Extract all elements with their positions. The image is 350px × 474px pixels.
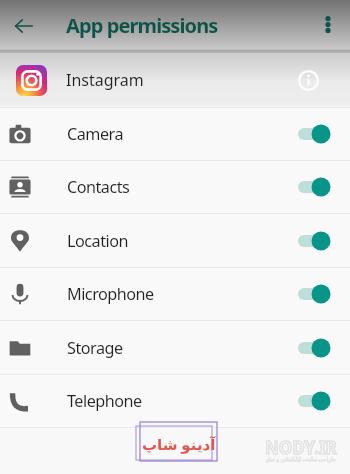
button[interactable]: Toggle permission [298,175,334,199]
staticText: Microphone [67,283,154,305]
button[interactable]: Microphone [0,268,350,320]
staticText: آدینو شاپ [142,434,216,454]
staticText: Location [67,230,128,252]
staticText: NODY.IR [265,436,337,459]
button[interactable]: Camera [0,108,350,160]
staticText: Instagram [66,69,144,91]
button[interactable]: Toggle permission [298,122,334,146]
button[interactable]: Telephone [0,375,350,427]
button[interactable]: Toggle permission [298,389,334,413]
button[interactable]: App info [287,59,329,101]
staticText: طراحی سایت، اپلیکیشن و سئو [266,455,336,462]
button[interactable]: Location [0,214,350,267]
button[interactable]: Toggle permission [298,336,334,360]
button[interactable]: Instagram [0,53,350,107]
staticText: Storage [67,337,123,359]
staticText: Telephone [67,390,142,412]
button[interactable]: Toggle permission [298,282,334,306]
button[interactable]: More options [305,2,350,50]
button[interactable]: Toggle permission [298,229,334,253]
staticText: App permissions [66,12,218,39]
button[interactable]: Storage [0,321,350,374]
button[interactable]: Contacts [0,161,350,213]
button[interactable]: Back [0,2,48,50]
staticText: Contacts [67,176,130,198]
staticText: Camera [67,123,124,145]
